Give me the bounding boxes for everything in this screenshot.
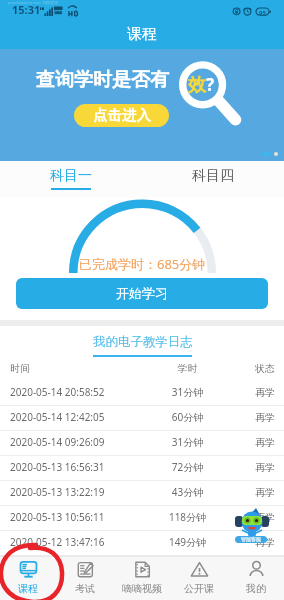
staticText: 公开课 (184, 583, 214, 595)
staticText: 149分钟 (120, 537, 255, 549)
staticText: 点击进入 (93, 107, 151, 124)
staticText: 智能客服 (241, 537, 261, 543)
staticText: yoochejuanp.com 驾校联盟 (8, 0, 59, 5)
staticText: 118分钟 (120, 512, 255, 524)
staticText: 15:31 (12, 4, 41, 17)
staticText: 2020-05-14 09:26:09 (10, 437, 120, 449)
staticText: 效 (188, 75, 206, 97)
button[interactable]: 2020-05-14 20:58:52 (0, 381, 284, 405)
button[interactable]: 2020-05-12 13:47:16 (0, 531, 284, 555)
staticText: 再学 (255, 437, 284, 449)
staticText: 2020-05-12 13:47:16 (10, 537, 120, 549)
staticText: 再学 (255, 462, 284, 474)
staticText: 时间 (10, 363, 120, 375)
button[interactable]: 点击进入 (74, 104, 169, 127)
staticText: 95 (259, 9, 266, 16)
button[interactable]: 2020-05-14 12:42:05 (0, 406, 284, 430)
staticText: 43分钟 (120, 487, 255, 499)
staticText: 2020-05-14 20:58:52 (10, 387, 120, 399)
staticText: 状态 (255, 363, 284, 375)
button[interactable]: 智能客服 (234, 505, 270, 545)
staticText: 2020-05-13 16:56:31 (10, 462, 120, 474)
staticText: 2020-05-14 12:42:05 (10, 412, 120, 424)
staticText: 再学 (255, 512, 284, 524)
staticText: 再学 (255, 387, 284, 399)
staticText: ? (206, 75, 215, 95)
button[interactable]: Courses (0, 557, 56, 600)
button[interactable]: Exams (56, 557, 113, 600)
button[interactable]: 我的电子教学日志 (93, 326, 192, 357)
staticText: 31分钟 (120, 387, 255, 399)
staticText: 考试 (75, 583, 95, 595)
button[interactable]: Profile (227, 557, 284, 600)
staticText: 课程 (18, 583, 38, 595)
staticText: 我的 (246, 583, 266, 595)
staticText: 再学 (255, 412, 284, 424)
button[interactable]: Videos (113, 557, 170, 600)
staticText: 嘀嘀视频 (122, 583, 162, 595)
staticText: 已完成学时：685分钟 (79, 257, 206, 273)
staticText: 再学 (255, 487, 284, 499)
staticText: 学时 (120, 363, 255, 375)
staticText: 2020-05-13 10:56:11 (10, 512, 120, 524)
staticText: 31分钟 (120, 437, 255, 449)
staticText: 开始学习 (116, 286, 168, 302)
staticText: 再学 (255, 537, 284, 549)
button[interactable]: 查询学时是否有 (0, 49, 284, 161)
button[interactable]: 2020-05-13 10:56:11 (0, 506, 284, 530)
staticText: 查询学时是否有 (36, 69, 169, 92)
staticText: 课程 (127, 26, 157, 44)
staticText: 科目四 (192, 167, 234, 184)
staticText: 2020-05-13 13:22:19 (10, 487, 120, 499)
staticText: 72分钟 (120, 462, 255, 474)
button[interactable]: Open class (170, 557, 227, 600)
button[interactable]: 2020-05-13 16:56:31 (0, 456, 284, 480)
staticText: 我的电子教学日志 (93, 335, 192, 350)
button[interactable]: 科目一 (0, 161, 142, 197)
button[interactable]: 开始学习 (16, 278, 268, 309)
button[interactable]: 科目四 (142, 161, 284, 197)
button[interactable]: 2020-05-14 09:26:09 (0, 431, 284, 455)
staticText: 科目一 (50, 167, 92, 184)
staticText: 60分钟 (120, 412, 255, 424)
button[interactable]: 2020-05-13 13:22:19 (0, 481, 284, 505)
